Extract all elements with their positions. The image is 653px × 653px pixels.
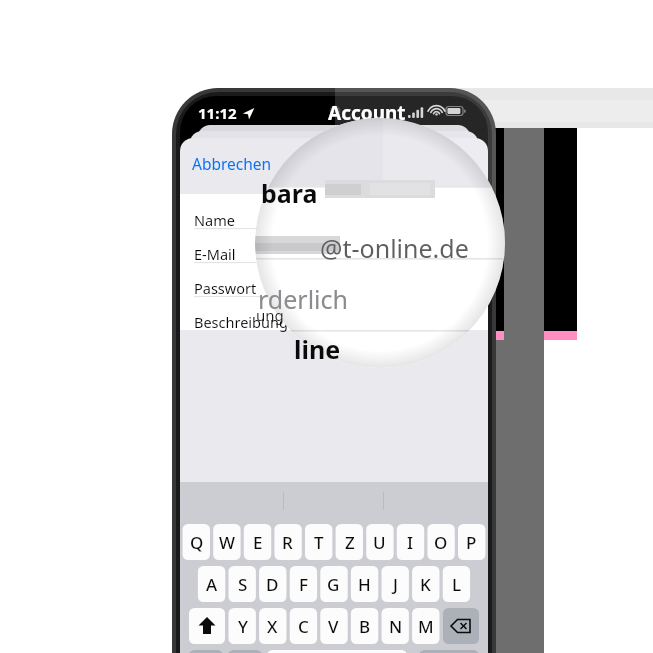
button[interactable]: L — [443, 566, 470, 602]
staticText: Name — [194, 210, 235, 230]
staticText: rderlich — [258, 282, 348, 316]
button[interactable]: Beschreibung — [180, 304, 488, 338]
button[interactable]: K — [412, 566, 439, 602]
button[interactable]: H — [351, 566, 378, 602]
button[interactable]: N — [382, 608, 409, 644]
button[interactable]: D — [259, 566, 286, 602]
button[interactable]: G — [320, 566, 347, 602]
button[interactable]: I — [397, 524, 424, 560]
button[interactable]: A — [198, 566, 225, 602]
staticText: F — [299, 573, 308, 596]
staticText: 11:12 — [198, 103, 237, 123]
staticText: Passwort — [194, 278, 257, 298]
button[interactable]: Abbrechen — [186, 150, 278, 177]
button[interactable]: T — [305, 524, 332, 560]
staticText: S — [238, 573, 248, 596]
button[interactable]: C — [290, 608, 317, 644]
staticText: Beschreibung — [194, 312, 288, 332]
button[interactable]: Q — [183, 524, 210, 560]
staticText: C — [298, 615, 309, 638]
button[interactable]: V — [320, 608, 347, 644]
staticText: R — [282, 531, 293, 554]
button[interactable]: F — [290, 566, 317, 602]
button[interactable]: Y — [229, 608, 256, 644]
button[interactable]: B — [351, 608, 378, 644]
staticText: H — [358, 573, 371, 596]
button[interactable]: P — [458, 524, 485, 560]
staticText: B — [359, 615, 371, 638]
staticText: J — [393, 573, 398, 596]
button[interactable]: Z — [336, 524, 363, 560]
button[interactable]: O — [427, 524, 454, 560]
staticText: Abbrechen — [192, 153, 272, 174]
staticText: Account — [328, 100, 406, 126]
button[interactable]: W — [213, 524, 240, 560]
staticText: L — [452, 573, 462, 596]
button[interactable]: E-Mail — [180, 236, 488, 270]
staticText: M — [418, 615, 434, 638]
staticText: K — [420, 573, 431, 596]
button[interactable]: X — [259, 608, 286, 644]
button[interactable]: Passwort — [180, 270, 488, 304]
staticText: V — [328, 615, 339, 638]
button[interactable]: R — [274, 524, 301, 560]
staticText: I — [407, 531, 414, 554]
button[interactable]: Name — [180, 202, 488, 236]
staticText: @t-online.de — [320, 231, 469, 265]
staticText: D — [266, 573, 279, 596]
button[interactable]: J — [382, 566, 409, 602]
staticText: A — [206, 573, 218, 596]
staticText: E-Mail — [194, 244, 236, 264]
button[interactable]: M — [412, 608, 439, 644]
staticText: line — [294, 332, 341, 366]
staticText: E — [253, 531, 263, 554]
staticText: T — [314, 531, 324, 554]
staticText: Q — [190, 531, 204, 554]
staticText: ung — [256, 305, 284, 325]
staticText: bara — [261, 176, 318, 210]
staticText: W — [219, 531, 235, 554]
staticText: X — [267, 615, 278, 638]
staticText: O — [434, 531, 448, 554]
staticText: Z — [345, 531, 355, 554]
staticText: P — [466, 531, 477, 554]
staticText: N — [389, 615, 403, 638]
staticText: U — [373, 531, 386, 554]
button[interactable]: S — [229, 566, 256, 602]
button[interactable]: U — [366, 524, 393, 560]
staticText: Y — [238, 615, 248, 638]
staticText: G — [327, 573, 340, 596]
button[interactable]: E — [244, 524, 271, 560]
